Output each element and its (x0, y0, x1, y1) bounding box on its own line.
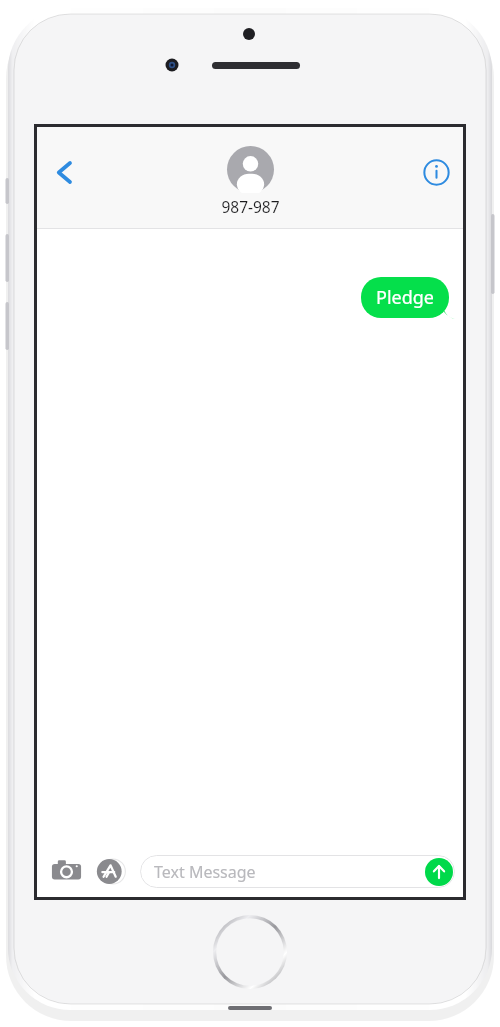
staticText: Text Message (154, 861, 256, 883)
button[interactable]: Details (414, 150, 458, 194)
button[interactable]: Pledge (361, 277, 449, 318)
button[interactable]: 987-987 (221, 146, 280, 217)
staticText: 987-987 (221, 196, 280, 217)
button[interactable]: Back (41, 149, 87, 195)
staticText: Pledge (376, 285, 434, 310)
button[interactable]: Send (425, 858, 453, 886)
button[interactable]: Camera (46, 851, 86, 891)
button[interactable]: App Store (90, 851, 130, 891)
button[interactable]: Text Message (140, 855, 455, 888)
